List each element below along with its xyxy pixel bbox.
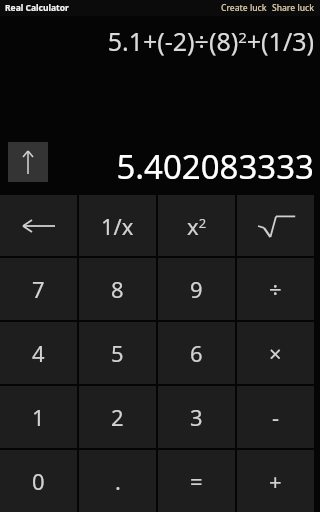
staticText: 5.402083333 bbox=[116, 144, 314, 189]
button[interactable]: 7 bbox=[0, 258, 77, 320]
staticText: Real Calculator bbox=[5, 2, 69, 14]
staticText: 0 bbox=[32, 466, 45, 496]
staticText: 8 bbox=[111, 274, 124, 304]
button[interactable]: 4 bbox=[0, 322, 77, 384]
button[interactable]: 0 bbox=[0, 450, 77, 512]
button[interactable]: - bbox=[237, 386, 314, 448]
staticText: 7 bbox=[32, 274, 45, 304]
button[interactable]: × bbox=[237, 322, 314, 384]
button[interactable]: 3 bbox=[158, 386, 235, 448]
button[interactable]: . bbox=[79, 450, 156, 512]
button[interactable]: Square bbox=[158, 195, 235, 256]
button[interactable]: 1 bbox=[0, 386, 77, 448]
staticText: 5.1+(-2)÷(8)2+(1/3) bbox=[107, 24, 314, 58]
button[interactable]: 2 bbox=[79, 386, 156, 448]
button[interactable]: + bbox=[237, 450, 314, 512]
button[interactable]: Create luck bbox=[220, 2, 268, 14]
staticText: 2 bbox=[111, 402, 124, 432]
button[interactable]: 1/x bbox=[79, 195, 156, 256]
staticText: x2 bbox=[187, 211, 207, 241]
staticText: Share luck bbox=[272, 2, 314, 14]
button[interactable]: Square root bbox=[237, 195, 314, 256]
staticText: - bbox=[272, 402, 280, 432]
staticText: 1/x bbox=[101, 211, 134, 241]
button[interactable]: 9 bbox=[158, 258, 235, 320]
staticText: = bbox=[190, 466, 203, 496]
button[interactable]: 8 bbox=[79, 258, 156, 320]
staticText: 4 bbox=[32, 338, 45, 368]
button[interactable]: Show history bbox=[8, 142, 48, 182]
staticText: 1 bbox=[32, 402, 45, 432]
button[interactable]: 5 bbox=[79, 322, 156, 384]
staticText: × bbox=[269, 338, 282, 368]
button[interactable]: = bbox=[158, 450, 235, 512]
staticText: 6 bbox=[190, 338, 203, 368]
button[interactable]: ÷ bbox=[237, 258, 314, 320]
staticText: . bbox=[115, 466, 121, 496]
staticText: Create luck bbox=[221, 2, 267, 14]
staticText: + bbox=[269, 466, 282, 496]
button[interactable]: Backspace bbox=[0, 195, 77, 256]
staticText: ÷ bbox=[269, 274, 282, 304]
staticText: 5 bbox=[111, 338, 124, 368]
staticText: 9 bbox=[190, 274, 203, 304]
staticText: 3 bbox=[190, 402, 203, 432]
button[interactable]: 6 bbox=[158, 322, 235, 384]
button[interactable]: Share luck bbox=[271, 2, 315, 14]
